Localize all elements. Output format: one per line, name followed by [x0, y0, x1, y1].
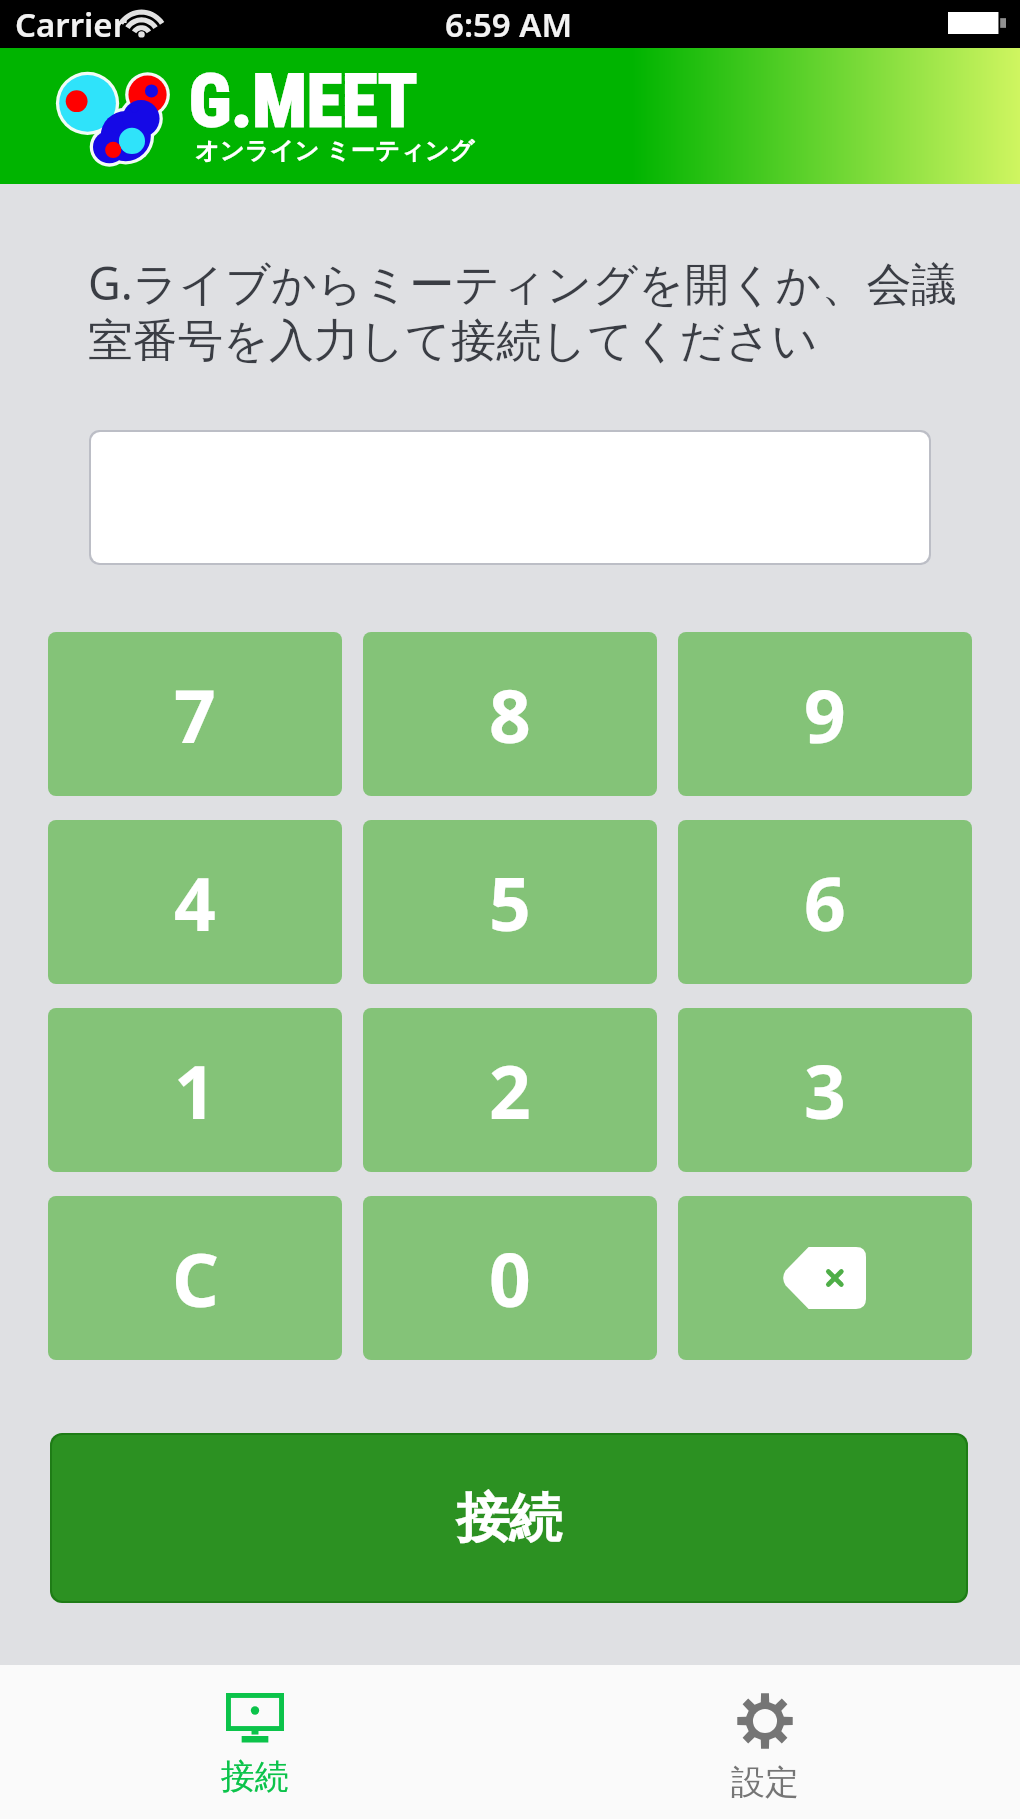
staticText: 室番号を入力して接続してください [88, 313, 818, 370]
staticText: C [172, 1229, 219, 1328]
staticText: オンライン ミーティング [195, 133, 475, 166]
button[interactable]: 1 [48, 1008, 342, 1172]
staticText: 2 [489, 1041, 531, 1140]
button[interactable]: C [48, 1196, 342, 1360]
staticText: 接続 [221, 1755, 289, 1798]
staticText: 6:59 AM [445, 2, 573, 47]
button[interactable]: 9 [678, 632, 972, 796]
button[interactable]: 2 [363, 1008, 657, 1172]
button[interactable]: 6 [678, 820, 972, 984]
staticText: 9 [804, 665, 846, 764]
button[interactable]: 接続 [0, 1665, 510, 1819]
button[interactable]: 0 [363, 1196, 657, 1360]
button[interactable]: 設定 [510, 1665, 1020, 1819]
staticText: Carrier [15, 2, 127, 47]
staticText: 0 [489, 1229, 531, 1328]
staticText: 3 [804, 1041, 846, 1140]
staticText: 1 [174, 1041, 216, 1140]
staticText: 5 [489, 853, 531, 952]
button[interactable]: 3 [678, 1008, 972, 1172]
button[interactable]: 接続 [52, 1435, 966, 1601]
button[interactable]: Delete [678, 1196, 972, 1360]
button[interactable]: 4 [48, 820, 342, 984]
staticText: G.ライブからミーティングを開くか、会議 [88, 252, 957, 313]
other: Delete [784, 1247, 866, 1309]
staticText: 6 [804, 853, 846, 952]
button[interactable]: 7 [48, 632, 342, 796]
button[interactable]: 5 [363, 820, 657, 984]
staticText: 接続 [456, 1485, 562, 1552]
button[interactable]: 8 [363, 632, 657, 796]
staticText: 7 [174, 665, 216, 764]
staticText: 4 [174, 853, 216, 952]
staticText: 8 [489, 665, 531, 764]
staticText: 設定 [731, 1761, 799, 1804]
staticText: G.MEET [189, 59, 418, 143]
